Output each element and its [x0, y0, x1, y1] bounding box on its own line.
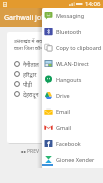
staticText: Copy to clipboard [56, 44, 102, 51]
button[interactable]: हरिद्वार [14, 69, 88, 79]
button[interactable]: Gmail [42, 119, 103, 135]
staticText: Gmail [56, 124, 72, 131]
staticText: Garhwali jokes [4, 13, 53, 23]
button[interactable]: Gionee Xender [42, 151, 103, 167]
staticText: Hangouts [56, 76, 82, 83]
button[interactable]: Hangouts [42, 71, 103, 87]
staticText: देहरादून [23, 91, 39, 98]
staticText: Drive [56, 92, 70, 99]
staticText: नैनीताल [23, 61, 39, 68]
button[interactable]: पौड़ी [14, 79, 88, 89]
button[interactable]: Messaging [42, 8, 103, 23]
button[interactable]: Facebook [42, 135, 103, 151]
button[interactable]: Email [42, 103, 103, 119]
staticText: Email [56, 108, 71, 115]
button[interactable]: Drive [42, 87, 103, 103]
staticText: Facebook [56, 140, 81, 147]
button[interactable]: देहरादून [14, 89, 88, 99]
button[interactable]: WLAN-Direct [42, 55, 103, 71]
staticText: उत्तराखंड में सर्वाधिक हिन्दुओं के निवास… [14, 38, 88, 52]
button[interactable]: Copy to clipboard [42, 39, 103, 55]
button[interactable]: Bluetooth [42, 23, 103, 39]
staticText: Messaging [56, 12, 85, 19]
staticText: WLAN-Direct [56, 60, 89, 67]
staticText: हरिद्वार [23, 71, 37, 78]
staticText: 14:06 [85, 0, 101, 8]
staticText: PREV [27, 148, 39, 155]
staticText: Gionee Xender [56, 156, 95, 163]
button[interactable]: नैनीताल [14, 59, 88, 69]
button[interactable]: PREV [20, 148, 39, 155]
staticText: Bluetooth [56, 28, 82, 35]
staticText: पौड़ी [23, 81, 32, 88]
